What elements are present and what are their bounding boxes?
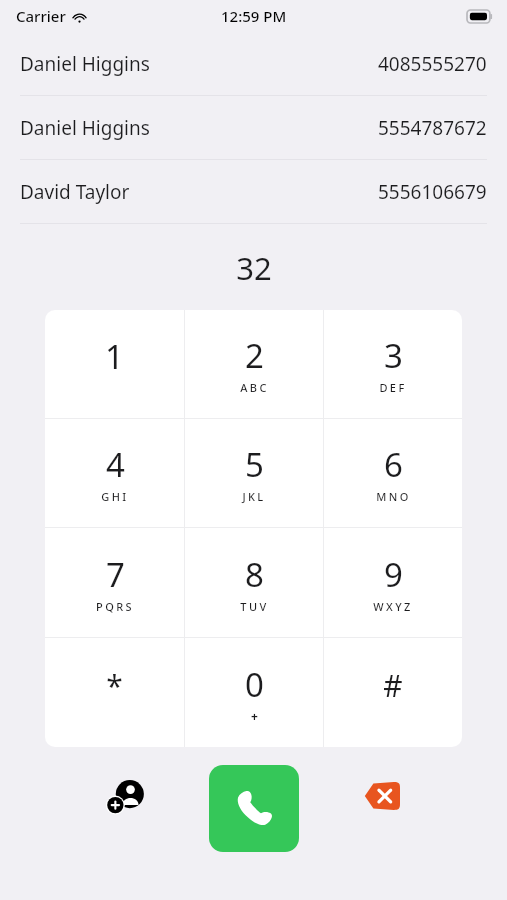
staticText: Carrier: [16, 6, 66, 26]
staticText: TUV: [240, 599, 269, 614]
staticText: *: [106, 665, 123, 706]
staticText: 7: [106, 552, 125, 597]
staticText: 9: [384, 552, 403, 597]
staticText: DEF: [379, 380, 407, 395]
staticText: David Taylor: [20, 179, 130, 205]
button[interactable]: 3: [324, 310, 462, 418]
button[interactable]: 5: [185, 419, 323, 527]
staticText: 3: [384, 333, 403, 378]
staticText: 4085555270: [378, 51, 487, 77]
button[interactable]: 9: [324, 528, 462, 637]
button[interactable]: 6: [324, 419, 462, 527]
staticText: 1: [105, 334, 124, 379]
staticText: GHI: [101, 489, 129, 504]
staticText: JKL: [242, 489, 266, 504]
button[interactable]: Daniel Higgins: [0, 96, 507, 159]
staticText: 0: [245, 662, 264, 707]
button[interactable]: 1: [45, 310, 184, 418]
button[interactable]: David Taylor: [0, 160, 507, 223]
staticText: 5554787672: [378, 115, 487, 141]
staticText: WXYZ: [373, 599, 413, 614]
staticText: 5: [245, 442, 264, 487]
staticText: +: [251, 708, 258, 724]
staticText: ABC: [240, 380, 269, 395]
button[interactable]: Call: [209, 765, 299, 852]
staticText: 2: [245, 333, 264, 378]
staticText: PQRS: [96, 599, 134, 614]
staticText: MNO: [376, 489, 411, 504]
staticText: Daniel Higgins: [20, 115, 150, 141]
staticText: 5556106679: [378, 179, 487, 205]
button[interactable]: #: [324, 638, 462, 747]
button[interactable]: Backspace: [356, 771, 406, 821]
button[interactable]: 4: [45, 419, 184, 527]
staticText: 12:59 PM: [221, 6, 287, 26]
staticText: 4: [106, 442, 125, 487]
staticText: 32: [236, 247, 272, 289]
button[interactable]: Daniel Higgins: [0, 32, 507, 95]
button[interactable]: 2: [185, 310, 323, 418]
staticText: 8: [245, 552, 264, 597]
button[interactable]: 0: [185, 638, 323, 747]
button[interactable]: *: [45, 638, 184, 747]
staticText: 6: [384, 442, 403, 487]
button[interactable]: 7: [45, 528, 184, 637]
button[interactable]: Add contact: [101, 771, 151, 821]
staticText: Daniel Higgins: [20, 51, 150, 77]
staticText: #: [383, 665, 403, 706]
button[interactable]: 8: [185, 528, 323, 637]
